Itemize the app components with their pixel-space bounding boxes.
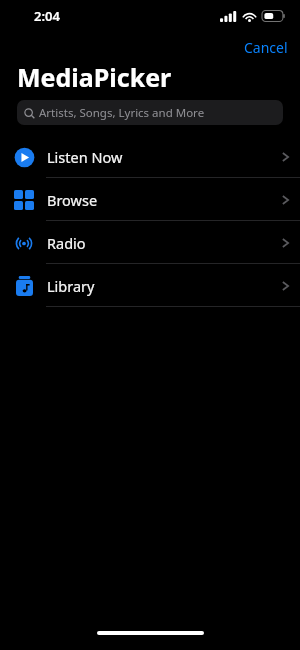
staticText: Library	[47, 276, 282, 296]
button[interactable]: Artists, Songs, Lyrics and More	[17, 100, 283, 125]
button[interactable]: Cancel	[232, 35, 300, 60]
staticText: Browse	[47, 190, 282, 210]
button[interactable]: Listen Now	[0, 135, 300, 178]
button[interactable]: Library	[0, 264, 300, 307]
button[interactable]: Radio	[0, 221, 300, 264]
staticText: 2:04	[34, 7, 60, 25]
button[interactable]: Browse	[0, 178, 300, 221]
staticText: MediaPicker	[17, 60, 172, 94]
staticText: Cancel	[244, 38, 288, 57]
staticText: Artists, Songs, Lyrics and More	[39, 105, 205, 121]
staticText: Listen Now	[47, 147, 282, 167]
staticText: Radio	[47, 233, 282, 253]
